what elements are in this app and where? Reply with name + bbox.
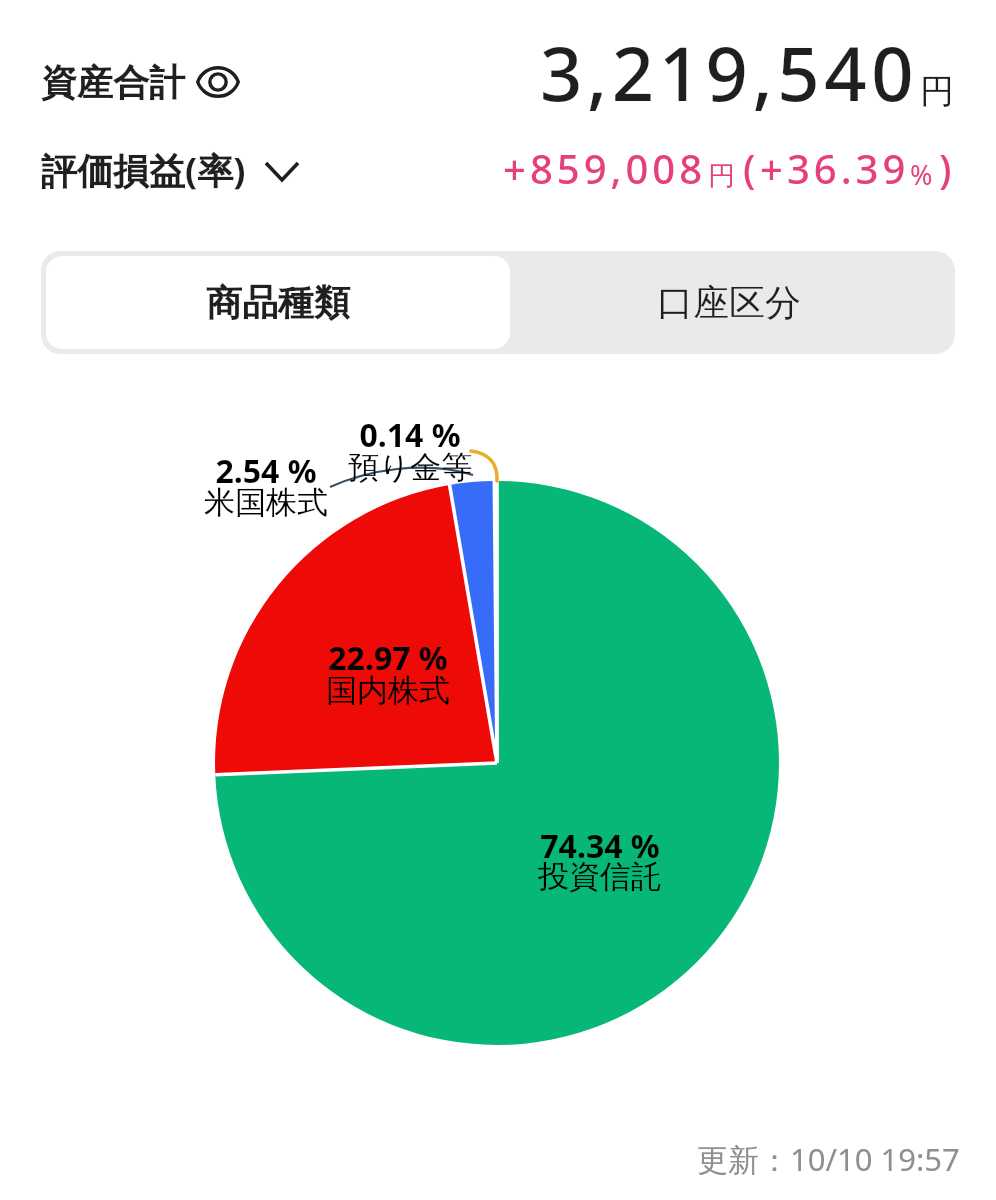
staticText: 0.14 % <box>250 413 570 457</box>
staticText: 22.97 % <box>228 636 548 680</box>
button[interactable]: 商品種類 <box>46 256 510 349</box>
staticText: ) <box>939 141 956 195</box>
staticText: 投資信託 <box>440 857 760 896</box>
staticText: 3,219,540 <box>540 22 919 123</box>
button[interactable]: 口座区分 <box>506 251 951 354</box>
staticText: 74.34 % <box>440 824 760 868</box>
staticText: 2.54 % <box>106 449 426 493</box>
staticText: 預り金等 <box>250 448 570 487</box>
staticText: 米国株式 <box>106 483 426 522</box>
staticText: 口座区分 <box>657 280 801 325</box>
staticText: 円 <box>708 159 735 193</box>
staticText: 国内株式 <box>228 671 548 710</box>
staticText: 円 <box>920 70 954 113</box>
staticText: +36.39 <box>760 141 910 195</box>
staticText: % <box>910 156 933 193</box>
button[interactable]: 資産合計 <box>41 60 240 105</box>
staticText: 更新：10/10 19:57 <box>697 1138 960 1180</box>
button[interactable]: 評価損益(率) <box>41 146 294 195</box>
staticText: +859,008 <box>503 141 707 195</box>
other: 資産合計の表示を切り替え <box>196 66 240 98</box>
staticText: ( <box>743 141 760 195</box>
other: 資産構成の円グラフ <box>0 0 996 1200</box>
staticText: 資産合計 <box>41 60 185 105</box>
other: 評価損益の表示を切り替え <box>264 153 300 181</box>
staticText: 評価損益(率) <box>41 146 246 195</box>
staticText: 商品種類 <box>206 280 350 325</box>
